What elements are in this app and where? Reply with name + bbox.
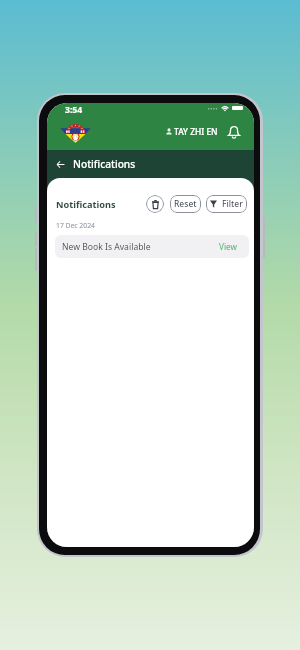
button[interactable]: Delete all [146,195,164,213]
staticText: View [219,241,237,252]
button[interactable]: New Book Is Available [55,235,249,258]
staticText: 3:54 [65,104,83,116]
button[interactable]: Back [53,157,68,172]
staticText: Notifications [56,198,116,211]
button[interactable]: TAY ZHI EN [165,124,219,139]
button[interactable]: Home [60,122,91,143]
staticText: 17 Dec 2024 [56,221,95,230]
button[interactable]: Reset [170,195,201,213]
staticText: Filter [222,198,243,210]
button[interactable]: Filter [206,195,247,213]
staticText: TAY ZHI EN [174,126,218,137]
staticText: Reset [174,198,197,210]
staticText: New Book Is Available [62,241,151,253]
button[interactable]: Notifications [226,124,241,140]
staticText: Notifications [73,157,136,171]
